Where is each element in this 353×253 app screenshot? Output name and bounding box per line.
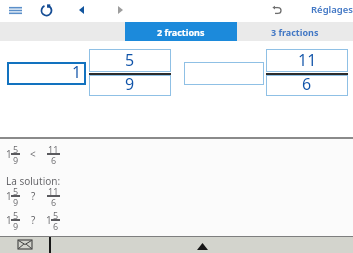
staticText: 5 [125,49,135,71]
button[interactable]: 6 [266,75,348,96]
staticText: 9 [13,220,19,231]
button[interactable]: 1 [7,62,86,85]
button[interactable]: 5 [89,49,171,72]
staticText: < [30,147,36,161]
staticText: 5 [53,209,59,220]
staticText: 11 [298,49,317,71]
staticText: 1 [72,61,82,83]
staticText: 1 [6,213,12,227]
staticText: 1 [6,189,12,203]
button[interactable]: Forward [110,0,130,20]
staticText: 2 fractions [157,26,205,38]
staticText: 5 [13,143,19,154]
staticText: 6 [51,196,57,207]
button[interactable]: Mail [0,236,49,253]
button[interactable] [184,62,264,85]
button[interactable]: 11 [266,49,348,72]
staticText: 1 [6,147,12,161]
button[interactable]: Expand [190,236,214,253]
staticText: 3 fractions [271,26,319,38]
staticText: 6 [51,154,57,165]
staticText: 5 [13,209,19,220]
staticText: ? [31,189,36,203]
button[interactable]: Refresh [35,0,57,20]
button[interactable]: Réglages [305,0,353,19]
staticText: 11 [48,143,59,154]
staticText: 1 [46,213,52,227]
staticText: 9 [13,196,19,207]
button[interactable]: Undo [266,0,288,20]
staticText: La solution: [6,174,61,188]
staticText: 9 [13,154,19,165]
staticText: 5 [13,185,19,196]
button[interactable]: 2 fractions [125,22,237,41]
staticText: 9 [125,73,135,94]
button[interactable]: 3 fractions [237,22,353,41]
button[interactable]: 9 [89,75,171,96]
staticText: 6 [302,73,312,94]
staticText: 6 [53,220,59,231]
staticText: 11 [48,185,59,196]
button[interactable]: Back [71,0,91,20]
staticText: Réglages [311,3,353,16]
button[interactable]: Menu [2,0,28,20]
staticText: ? [31,213,36,227]
